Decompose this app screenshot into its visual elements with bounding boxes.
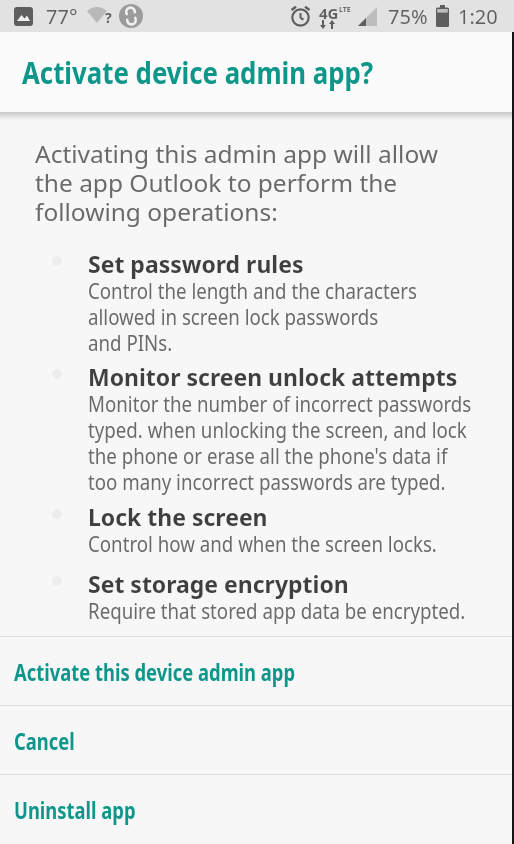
staticText: Monitor the number of incorrect password…	[88, 390, 472, 497]
staticText: Require that stored app data be encrypte…	[88, 597, 465, 626]
staticText: Set storage encryption	[88, 567, 349, 600]
staticText: ?	[105, 8, 112, 27]
button[interactable]: Cancel	[0, 706, 514, 774]
staticText: 75%	[388, 3, 428, 30]
staticText: 77°	[46, 3, 78, 30]
staticText: Uninstall app	[14, 794, 136, 825]
staticText: Set password rules	[88, 247, 303, 280]
staticText: Lock the screen	[88, 500, 268, 533]
button[interactable]: Activate this device admin app	[0, 637, 514, 705]
staticText: 4G	[319, 3, 339, 23]
staticText: Control how and when the screen locks.	[88, 530, 437, 559]
staticText: LTE	[339, 5, 351, 15]
staticText: Activate device admin app?	[22, 52, 374, 93]
button[interactable]: Uninstall app	[0, 775, 514, 844]
staticText: Activate this device admin app	[14, 656, 296, 687]
staticText: Monitor screen unlock attempts	[88, 360, 458, 393]
staticText: Activating this admin app will allow the…	[35, 137, 439, 228]
staticText: 1:20	[458, 3, 498, 30]
staticText: Cancel	[14, 725, 75, 756]
staticText: Control the length and the characters al…	[88, 277, 417, 358]
